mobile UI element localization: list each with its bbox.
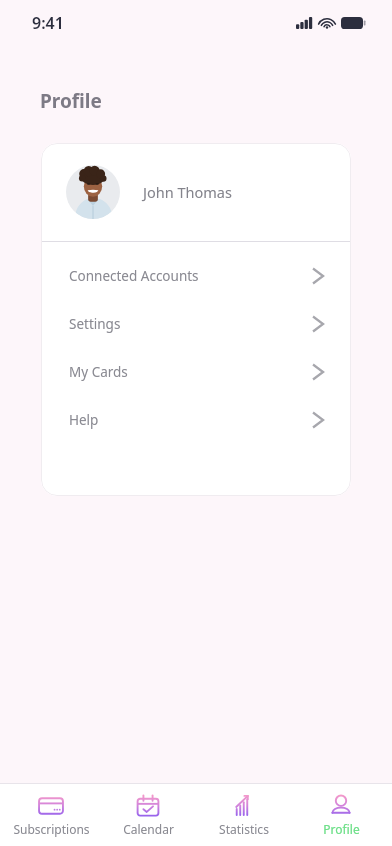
staticText: Profile [323,821,360,837]
staticText: Connected Accounts [69,267,199,285]
staticText: John Thomas [143,182,232,202]
button[interactable]: Calendar [102,789,194,842]
staticText: My Cards [69,363,128,381]
staticText: Help [69,411,99,429]
button[interactable]: John Thomas [41,143,351,241]
button[interactable]: Profile [295,789,387,842]
staticText: Statistics [219,821,269,837]
staticText: Settings [69,315,121,333]
button[interactable]: My Cards [41,348,351,396]
staticText: Calendar [123,821,174,837]
staticText: 9:41 [32,12,64,34]
button[interactable]: Statistics [198,789,290,842]
button[interactable]: Settings [41,300,351,348]
button[interactable]: Connected Accounts [41,252,351,300]
staticText: Profile [40,88,102,114]
staticText: Subscriptions [13,821,90,837]
button[interactable]: Help [41,396,351,444]
button[interactable]: Subscriptions [5,789,97,842]
